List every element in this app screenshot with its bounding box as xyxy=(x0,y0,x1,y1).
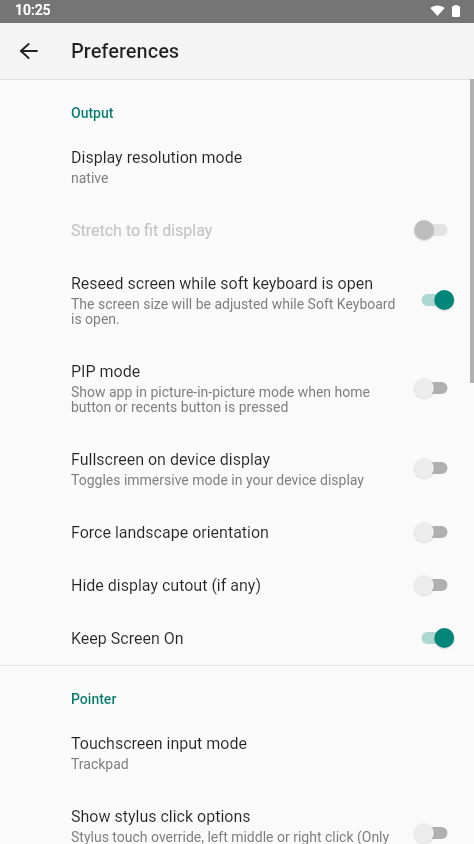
button[interactable]: Off xyxy=(414,213,455,247)
button[interactable]: Reseed screen while soft keyboard is ope… xyxy=(0,257,474,345)
button[interactable]: Display resolution mode xyxy=(0,131,474,204)
button[interactable]: Stretch to fit display xyxy=(0,204,474,257)
button[interactable]: Off xyxy=(414,816,455,844)
button[interactable]: Off xyxy=(414,451,455,485)
staticText: Preferences xyxy=(71,39,180,62)
staticText: Touchscreen input mode xyxy=(71,734,247,753)
button[interactable]: Keep Screen On xyxy=(0,612,474,665)
button[interactable]: Navigate up xyxy=(4,27,52,75)
staticText: Hide display cutout (if any) xyxy=(71,576,261,595)
staticText: Display resolution mode xyxy=(71,148,243,167)
staticText: PIP mode xyxy=(71,362,141,381)
staticText: Show stylus click options xyxy=(71,807,251,826)
staticText: Force landscape orientation xyxy=(71,523,269,542)
button[interactable]: On xyxy=(414,283,455,317)
staticText: Trackpad xyxy=(71,756,129,772)
staticText: Toggles immersive mode in your device di… xyxy=(71,472,364,488)
staticText: Stretch to fit display xyxy=(71,221,213,240)
button[interactable]: Off xyxy=(414,371,455,405)
staticText: Output xyxy=(71,105,114,121)
staticText: Pointer xyxy=(71,691,117,707)
button[interactable]: PIP mode xyxy=(0,345,474,433)
button[interactable]: On xyxy=(414,621,455,655)
staticText: Show app in picture-in-picture mode when… xyxy=(71,384,405,416)
staticText: Fullscreen on device display xyxy=(71,450,270,469)
button[interactable]: Touchscreen input mode xyxy=(0,717,474,790)
button[interactable]: Off xyxy=(414,568,455,602)
staticText: 10:25 xyxy=(15,2,51,18)
staticText: The screen size will be adjusted while S… xyxy=(71,296,405,328)
staticText: Stylus touch override, left middle or ri… xyxy=(71,829,405,844)
staticText: Keep Screen On xyxy=(71,629,184,648)
button[interactable]: Show stylus click options xyxy=(0,790,474,844)
button[interactable]: Force landscape orientation xyxy=(0,506,474,559)
staticText: Reseed screen while soft keyboard is ope… xyxy=(71,274,373,293)
button[interactable]: Fullscreen on device display xyxy=(0,433,474,506)
staticText: native xyxy=(71,170,109,186)
button[interactable]: Hide display cutout (if any) xyxy=(0,559,474,612)
button[interactable]: Off xyxy=(414,515,455,549)
